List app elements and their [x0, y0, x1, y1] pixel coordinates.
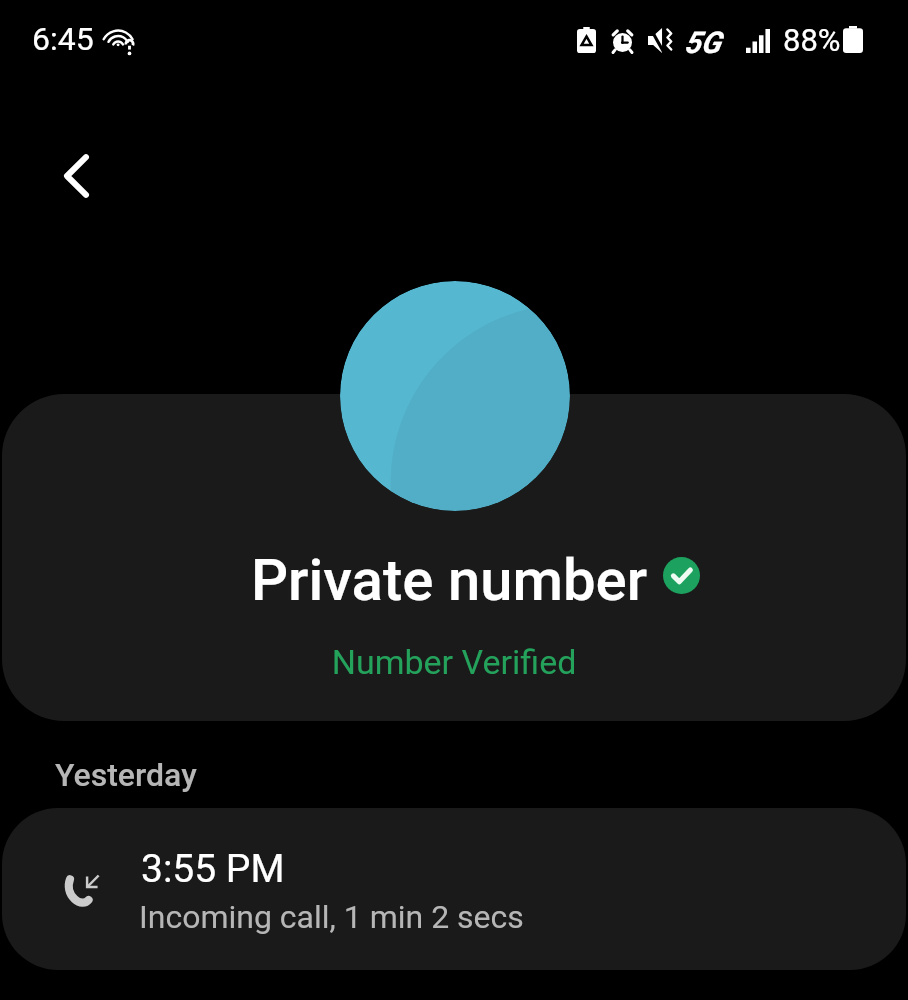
other: Verified: [663, 557, 700, 594]
staticText: 6:45: [32, 20, 94, 58]
staticText: Incoming call, 1 min 2 secs: [139, 898, 524, 936]
staticText: Yesterday: [55, 756, 197, 794]
staticText: 88%: [783, 22, 841, 58]
button[interactable]: Back: [34, 134, 118, 218]
staticText: Number Verified: [2, 642, 906, 682]
button[interactable]: Private number: [2, 394, 906, 721]
staticText: 3:55 PM: [141, 846, 285, 892]
staticText: Private number: [251, 546, 648, 614]
button[interactable]: 3:55 PM: [2, 808, 906, 970]
staticText: 5G: [684, 25, 721, 60]
